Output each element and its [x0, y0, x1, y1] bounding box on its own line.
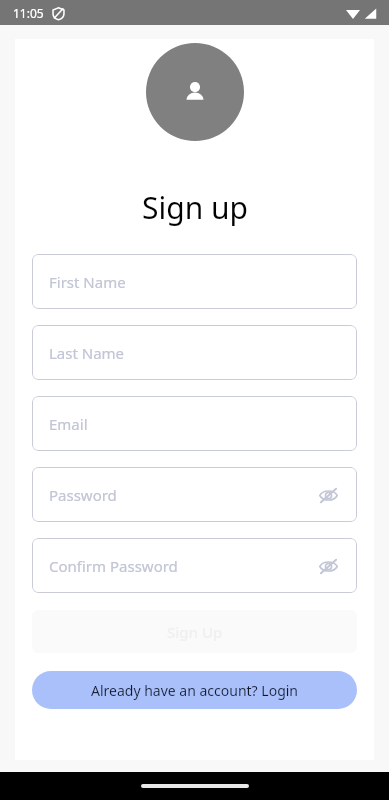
staticText: Confirm Password — [49, 556, 178, 576]
staticText: Sign up — [142, 187, 248, 228]
button[interactable]: Already have an account? Login — [32, 671, 357, 709]
staticText: 11:05 — [13, 5, 44, 21]
button[interactable]: Profile photo — [146, 43, 244, 141]
staticText: Password — [49, 485, 117, 505]
button[interactable]: Email — [32, 396, 357, 451]
button[interactable]: Password — [32, 467, 357, 522]
button[interactable]: Confirm Password — [32, 538, 357, 593]
staticText: Already have an account? Login — [91, 681, 299, 700]
staticText: First Name — [49, 272, 126, 292]
staticText: Sign Up — [167, 622, 223, 642]
staticText: Email — [49, 414, 88, 434]
staticText: Last Name — [49, 343, 125, 363]
button[interactable]: Toggle password visibility — [316, 554, 340, 578]
button[interactable]: Last Name — [32, 325, 357, 380]
button[interactable]: Toggle password visibility — [316, 483, 340, 507]
button[interactable]: First Name — [32, 254, 357, 309]
